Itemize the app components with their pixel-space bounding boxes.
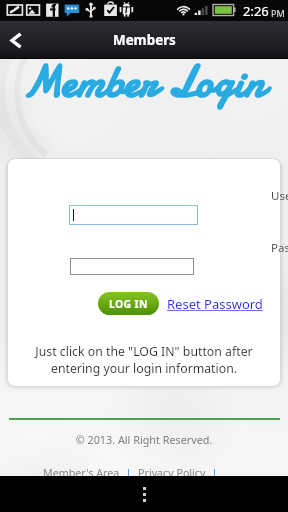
button[interactable]: More options xyxy=(124,476,164,512)
button[interactable] xyxy=(69,205,198,225)
button[interactable] xyxy=(70,258,194,275)
button[interactable]: Privacy Policy xyxy=(138,466,206,481)
button[interactable]: Reset Password xyxy=(167,295,263,313)
button[interactable]: Member's Area xyxy=(43,466,120,481)
button[interactable]: Back xyxy=(0,21,32,59)
staticText: © 2013. All Right Reserved. xyxy=(0,432,288,447)
staticText: 2:26 xyxy=(243,2,269,20)
staticText: Username xyxy=(271,188,288,204)
staticText: Member Login xyxy=(0,52,288,112)
staticText: PM xyxy=(271,7,285,19)
staticText: | xyxy=(206,466,218,481)
staticText: Just click on the "LOG IN" button after … xyxy=(32,343,256,376)
staticText: Members xyxy=(113,31,176,49)
staticText: Password xyxy=(271,240,288,256)
staticText: | xyxy=(120,466,138,481)
button[interactable]: LOG IN xyxy=(98,292,159,315)
staticText: Reset Password xyxy=(167,295,263,313)
staticText: LOG IN xyxy=(109,297,148,311)
staticText: Member Login xyxy=(0,52,288,112)
